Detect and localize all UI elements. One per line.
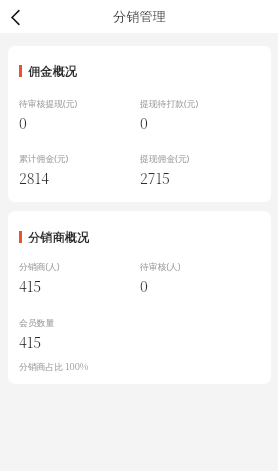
staticText: 2814 [19, 168, 49, 188]
staticText: 415 [19, 332, 42, 352]
staticText: 分销商占比 100% [19, 359, 89, 372]
staticText: 分销商概况 [28, 230, 89, 243]
staticText: 提现佣金(元) [140, 153, 190, 165]
staticText: 0 [140, 276, 148, 296]
staticText: 2715 [140, 168, 170, 188]
staticText: 0 [19, 113, 27, 133]
staticText: 提现待打款(元) [140, 98, 199, 110]
staticText: 累计佣金(元) [19, 153, 69, 165]
staticText: 415 [19, 276, 42, 296]
staticText: 佣金概况 [28, 64, 77, 77]
staticText: 0 [140, 113, 148, 133]
staticText: 分销管理 [113, 8, 166, 25]
staticText: 待审核提现(元) [19, 98, 78, 110]
staticText: 待审核(人) [140, 261, 181, 273]
button[interactable]: Back [0, 2, 30, 32]
staticText: 会员数量 [19, 318, 55, 329]
staticText: 分销商(人) [19, 261, 60, 273]
